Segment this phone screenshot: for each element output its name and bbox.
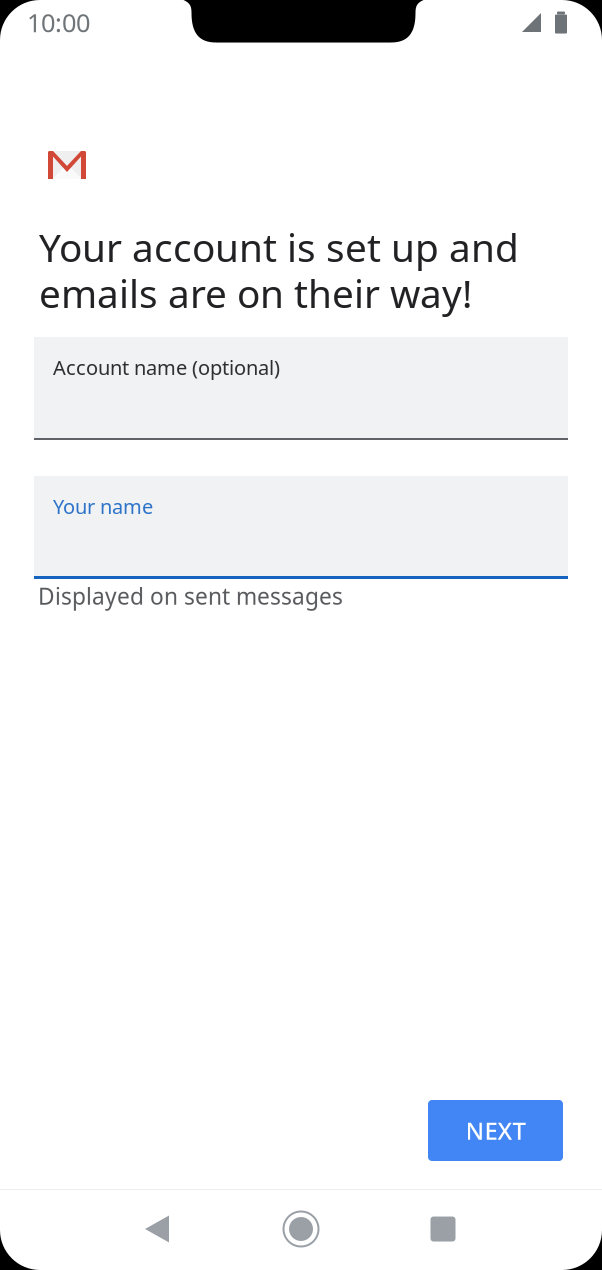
staticText: Your account is set up and <box>39 221 519 273</box>
button[interactable]: Recent apps <box>399 1189 487 1269</box>
button[interactable]: Account name (optional) <box>34 337 568 440</box>
staticText: 10:00 <box>27 6 90 39</box>
staticText: emails are on their way! <box>39 267 472 319</box>
button[interactable]: Back <box>113 1189 201 1269</box>
button[interactable]: Home <box>257 1189 345 1269</box>
staticText: Displayed on sent messages <box>38 581 343 611</box>
staticText: Account name (optional) <box>53 354 280 381</box>
button[interactable]: Your name <box>34 476 568 579</box>
staticText: NEXT <box>465 1115 525 1146</box>
button[interactable]: NEXT <box>428 1100 563 1161</box>
staticText: Your name <box>53 493 153 520</box>
